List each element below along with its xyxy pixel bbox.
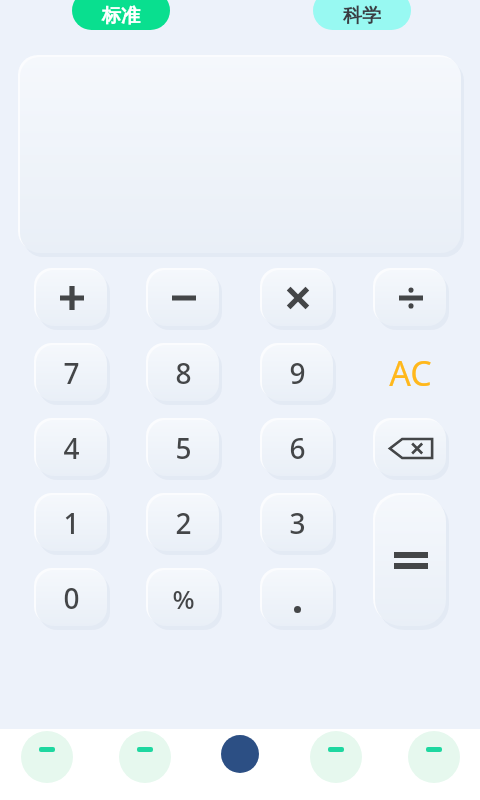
button[interactable]: 2: [148, 495, 219, 551]
button[interactable]: 7: [36, 345, 107, 401]
staticText: 7: [63, 354, 80, 392]
button[interactable]: [262, 570, 333, 626]
staticText: 5: [175, 429, 192, 467]
button[interactable]: Tool 4: [308, 731, 364, 787]
button[interactable]: %: [148, 570, 219, 626]
button[interactable]: Tool 2: [117, 731, 173, 787]
staticText: %: [172, 581, 195, 616]
button[interactable]: Divide: [375, 270, 446, 326]
button[interactable]: 9: [262, 345, 333, 401]
staticText: 6: [289, 429, 306, 467]
button[interactable]: 3: [262, 495, 333, 551]
staticText: 8: [175, 354, 192, 392]
button[interactable]: Tool 5: [406, 731, 462, 787]
button[interactable]: 1: [36, 495, 107, 551]
button[interactable]: 标准: [72, 0, 170, 30]
staticText: AC: [389, 350, 432, 396]
button[interactable]: 4: [36, 420, 107, 476]
staticText: 标准: [102, 4, 140, 28]
staticText: 科学: [343, 4, 381, 28]
staticText: 3: [289, 504, 306, 542]
staticText: 2: [175, 504, 192, 542]
staticText: 9: [289, 354, 306, 392]
staticText: 1: [63, 504, 80, 542]
button[interactable]: 6: [262, 420, 333, 476]
button[interactable]: 8: [148, 345, 219, 401]
button[interactable]: AC: [375, 345, 446, 401]
button[interactable]: Subtract: [148, 270, 219, 326]
button[interactable]: Calculator: [210, 729, 270, 787]
button[interactable]: Add: [36, 270, 107, 326]
button[interactable]: 0: [36, 570, 107, 626]
button[interactable]: 科学: [313, 0, 411, 30]
staticText: 0: [63, 579, 80, 617]
button[interactable]: Backspace: [375, 420, 446, 476]
button[interactable]: Tool 1: [19, 731, 75, 787]
button[interactable]: 5: [148, 420, 219, 476]
button[interactable]: Equals: [375, 495, 446, 626]
staticText: 4: [63, 429, 80, 467]
button[interactable]: Multiply: [262, 270, 333, 326]
